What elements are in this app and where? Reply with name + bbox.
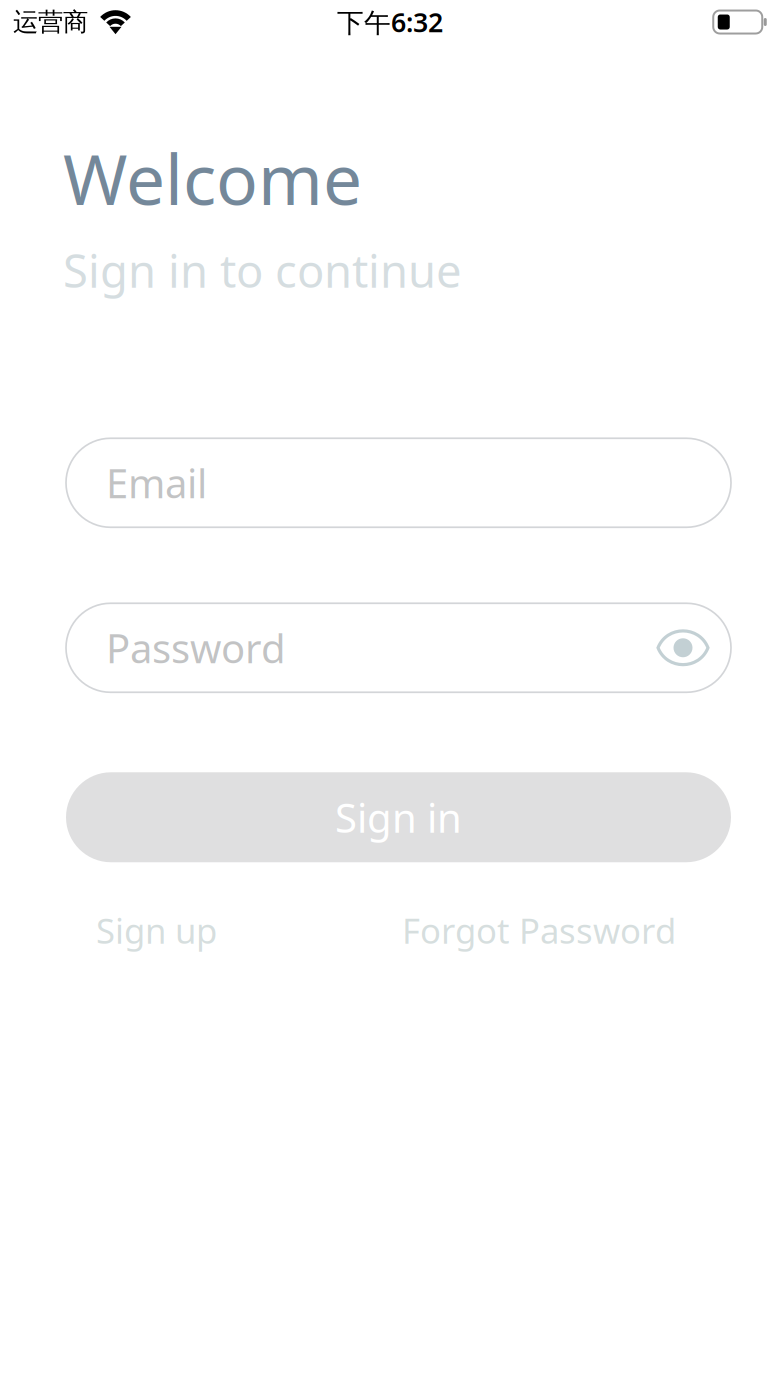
staticText: Sign up <box>96 907 217 953</box>
staticText: Sign in to continue <box>63 240 462 300</box>
button[interactable]: Sign up <box>96 907 217 953</box>
button[interactable]: Password <box>66 603 731 692</box>
staticText: Email <box>106 456 207 509</box>
button[interactable]: Forgot Password <box>402 907 676 953</box>
button[interactable]: Show password <box>656 627 710 669</box>
staticText: 运营商 <box>13 6 88 37</box>
staticText: Sign in <box>335 791 462 844</box>
staticText: Password <box>106 621 286 674</box>
button[interactable]: Email <box>66 438 731 527</box>
staticText: Welcome <box>63 132 362 224</box>
button[interactable]: Sign in <box>66 772 731 862</box>
staticText: Forgot Password <box>402 907 676 953</box>
staticText: 下午6:32 <box>337 4 443 40</box>
